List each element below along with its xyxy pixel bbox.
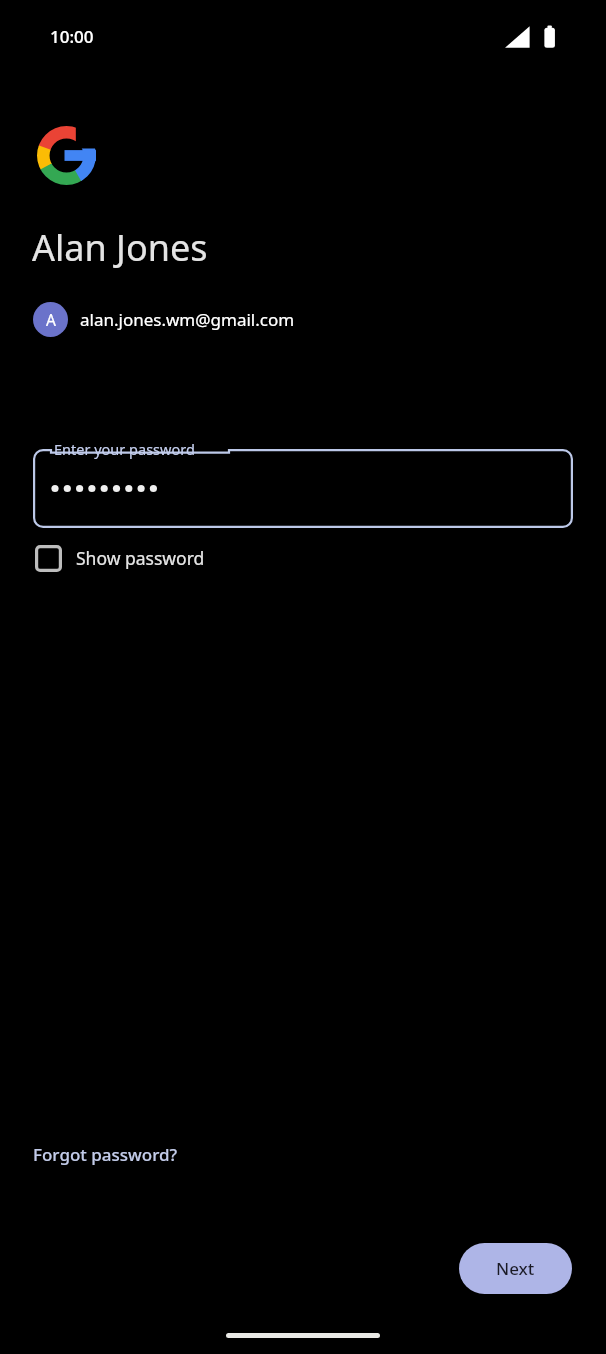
other: Google	[37, 126, 96, 185]
staticText: 10:00	[50, 25, 94, 48]
button[interactable]: Show password	[26, 537, 205, 579]
other: Signal and battery status	[505, 25, 569, 49]
staticText: Enter your password	[54, 439, 195, 459]
button[interactable]: Next	[459, 1243, 572, 1294]
button[interactable]: Forgot password?	[22, 1136, 189, 1173]
staticText: alan.jones.wm@gmail.com	[80, 308, 295, 331]
staticText: Show password	[76, 546, 205, 570]
button[interactable]: Enter your password	[33, 449, 573, 528]
staticText: Alan Jones	[32, 223, 208, 272]
staticText: Forgot password?	[33, 1143, 178, 1166]
staticText: Next	[496, 1257, 535, 1280]
staticText: A	[46, 309, 56, 330]
